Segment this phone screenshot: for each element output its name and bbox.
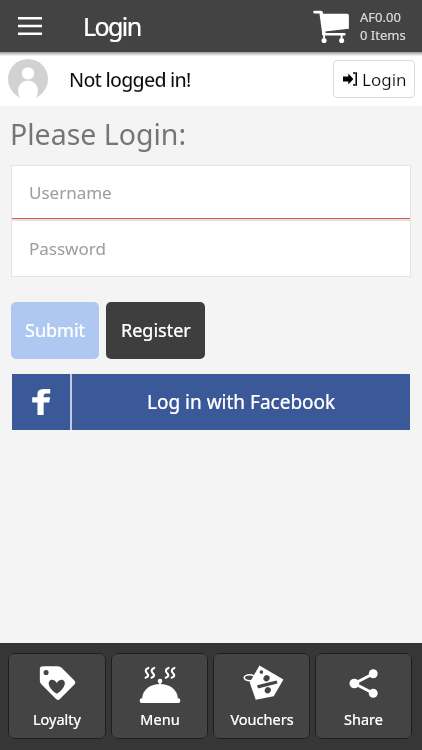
staticText: AF0.00 xyxy=(360,8,401,26)
staticText: Share xyxy=(344,709,383,729)
button[interactable]: Loyalty xyxy=(8,653,106,739)
staticText: Submit xyxy=(25,318,86,343)
button[interactable]: Menu xyxy=(111,653,208,739)
staticText: Not logged in! xyxy=(69,66,191,93)
staticText: Menu xyxy=(140,709,180,729)
button[interactable]: Username xyxy=(11,165,411,220)
button[interactable]: Open navigation menu xyxy=(7,0,53,52)
button[interactable]: Register xyxy=(106,302,205,359)
button[interactable]: Submit xyxy=(11,302,99,359)
staticText: Log in with Facebook xyxy=(147,389,336,415)
staticText: Password xyxy=(29,237,106,260)
staticText: 0 Items xyxy=(360,26,406,44)
staticText: Please Login: xyxy=(10,115,187,154)
staticText: Vouchers xyxy=(230,709,294,729)
staticText: Username xyxy=(29,181,112,204)
staticText: Login xyxy=(83,9,141,43)
staticText: Loyalty xyxy=(33,709,81,729)
button[interactable]: Password xyxy=(11,220,411,277)
button[interactable]: Vouchers xyxy=(213,653,310,739)
button[interactable]: Shopping cart xyxy=(312,8,406,44)
staticText: Register xyxy=(121,318,191,343)
button[interactable]: Log in with Facebook xyxy=(12,374,410,430)
button[interactable]: Share xyxy=(315,653,412,739)
staticText: Login xyxy=(362,68,407,91)
button[interactable]: Login xyxy=(333,60,415,98)
